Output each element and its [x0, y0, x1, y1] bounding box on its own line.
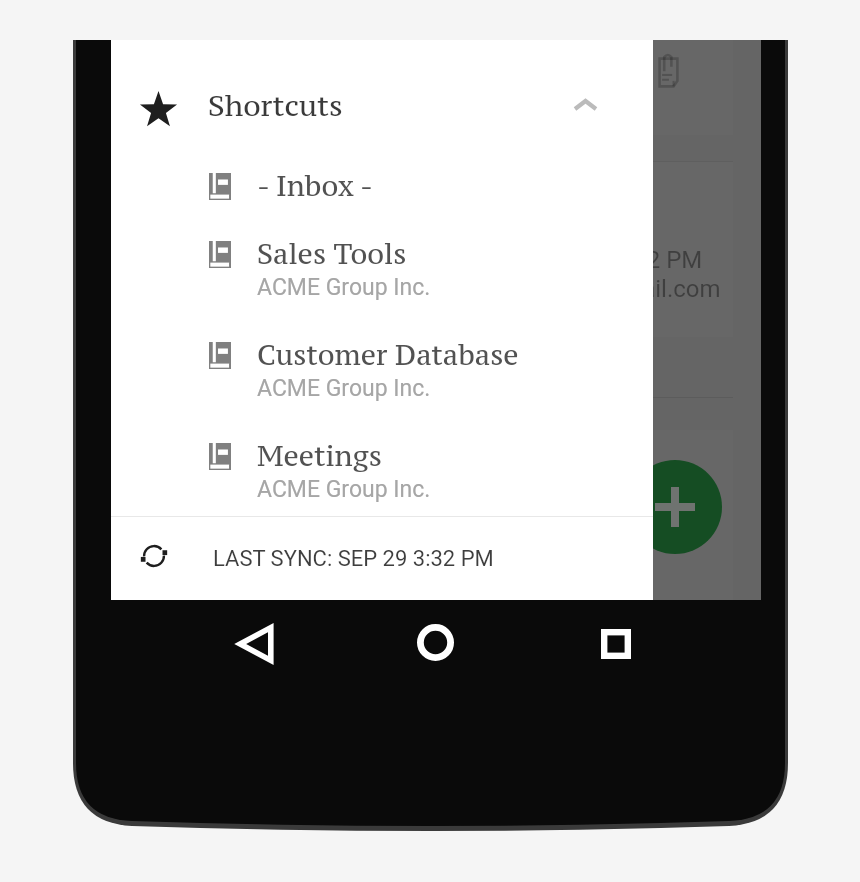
button[interactable]: Collapse shortcuts — [557, 83, 613, 127]
staticText: LAST SYNC: SEP 29 3:32 PM — [213, 546, 494, 572]
staticText: Customer Database — [257, 337, 519, 373]
button[interactable]: - Inbox - — [111, 168, 653, 230]
staticText: ACME Group Inc. — [257, 476, 431, 503]
staticText: 4:32 PM — [614, 246, 703, 274]
staticText: ACME Group Inc. — [257, 375, 431, 402]
staticText: jsmith@gmail.com — [520, 275, 721, 303]
button[interactable]: Back — [215, 604, 295, 684]
staticText: - Inbox - — [257, 168, 373, 204]
button[interactable]: Recent apps — [576, 604, 656, 684]
staticText: ACME Group Inc. — [257, 274, 431, 301]
button[interactable]: Add new item — [628, 460, 722, 554]
button[interactable]: Sales Tools — [111, 236, 653, 332]
staticText: Meetings — [257, 438, 382, 474]
button[interactable] — [111, 517, 653, 600]
staticText: Shortcuts — [208, 87, 343, 124]
button[interactable]: Home — [395, 602, 475, 682]
staticText: Sales Tools — [257, 236, 407, 272]
button[interactable]: Customer Database — [111, 337, 653, 433]
button[interactable]: Meetings — [111, 438, 653, 534]
button[interactable] — [111, 74, 653, 142]
